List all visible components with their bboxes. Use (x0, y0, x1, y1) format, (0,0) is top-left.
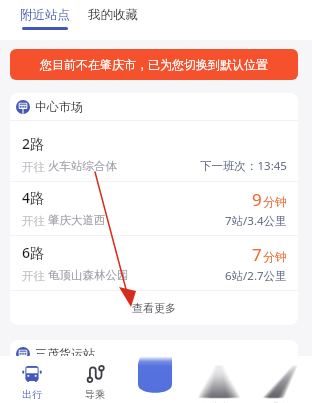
staticText: 附近站点 (20, 7, 70, 23)
button[interactable]: 本地生活 (188, 356, 250, 403)
staticText: 下一班次：13:45 (200, 158, 287, 174)
staticText: 分钟 (263, 194, 287, 209)
staticText: 6路 (22, 243, 45, 262)
staticText: 本地生活 (199, 401, 239, 403)
staticText: 分钟 (263, 249, 287, 264)
staticText: 龟顶山森林公园 (48, 268, 129, 282)
staticText: 三茂货运站 (35, 346, 95, 361)
staticText: 9 (252, 188, 262, 211)
staticText: 6站/2.7公里 (225, 268, 287, 284)
staticText: 查看更多 (132, 301, 176, 315)
staticText: 您目前不在肇庆市，已为您切换到默认位置 (40, 57, 268, 72)
staticText: 7 (252, 243, 262, 266)
staticText: 开往 (22, 159, 48, 175)
staticText: 开往 (22, 268, 48, 284)
staticText: 出行 (22, 388, 42, 401)
staticText: 开往 (22, 213, 48, 229)
button[interactable]: 中心市场 (10, 93, 298, 120)
button[interactable]: 附近站点 (20, 0, 70, 30)
staticText: 我的收藏 (88, 7, 138, 23)
staticText: 火车站综合体 (48, 159, 117, 173)
staticText: 7站/3.4公里 (225, 213, 287, 229)
button[interactable]: 查看更多 (10, 291, 298, 325)
staticText: 我的 (271, 401, 291, 403)
staticText: 肇庆大道西 (48, 213, 106, 227)
button[interactable]: 出行 (1, 356, 63, 401)
button[interactable]: 2路 (10, 121, 298, 181)
staticText: 导乘 (85, 388, 105, 401)
button[interactable]: 6路 (10, 236, 298, 290)
staticText: 2路 (22, 134, 45, 153)
staticText: 中心市场 (35, 99, 83, 114)
button[interactable]: 4路 (10, 182, 298, 235)
button[interactable]: 我的收藏 (88, 0, 138, 23)
staticText: 4路 (22, 188, 45, 207)
button[interactable]: 导乘 (64, 356, 126, 401)
button[interactable]: 扫一扫 (138, 357, 172, 394)
button[interactable]: 我的 (250, 356, 312, 403)
button[interactable]: 您目前不在肇庆市，已为您切换到默认位置 (10, 49, 298, 80)
